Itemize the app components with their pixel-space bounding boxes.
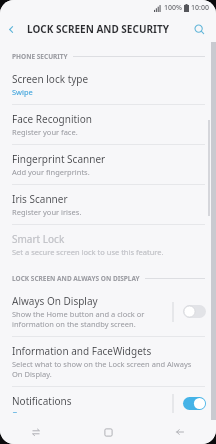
staticText: Iris Scanner [12,192,68,206]
button[interactable]: Information and FaceWidgets [0,337,216,386]
button[interactable]: Notifications toggle [181,395,208,412]
staticText: 10:00 [191,3,209,13]
staticText: Register your irises. [12,207,82,217]
staticText: Add your fingerprints. [12,167,90,177]
staticText: Information and FaceWidgets [12,344,152,358]
staticText: LOCK SCREEN AND ALWAYS ON DISPLAY [12,274,140,283]
staticText: Select what to show on the Lock screen a… [12,359,192,379]
staticText: Swipe [12,87,33,97]
button[interactable]: Screen lock type [0,65,216,104]
staticText: Show the Home button and a clock or info… [12,309,145,329]
button[interactable]: Back [144,420,216,444]
staticText: Face Recognition [12,112,92,126]
staticText: Fingerprint Scanner [12,152,106,166]
button[interactable]: Always On Display [0,287,216,336]
staticText: Smart Lock [12,232,65,246]
staticText: Notifications [12,394,72,408]
staticText: LOCK SCREEN AND SECURITY [27,22,169,36]
staticText: Always On Display [12,294,98,308]
staticText: Register your face. [12,127,78,137]
button[interactable]: Home [72,420,144,444]
button[interactable]: Iris Scanner [0,185,216,224]
button[interactable]: Search [189,19,209,39]
staticText: 100% [164,3,182,13]
button[interactable]: Face Recognition [0,105,216,144]
staticText: On [12,409,23,413]
button[interactable]: Back [0,18,22,40]
button[interactable]: Always On Display toggle [181,303,208,320]
staticText: Screen lock type [12,72,89,86]
button[interactable]: Notifications [0,387,216,420]
staticText: Set a secure screen lock to use this fea… [12,247,164,257]
button[interactable]: Smart Lock [0,225,216,264]
staticText: PHONE SECURITY [12,52,68,61]
button[interactable]: Fingerprint Scanner [0,145,216,184]
button[interactable]: Recents [0,420,72,444]
